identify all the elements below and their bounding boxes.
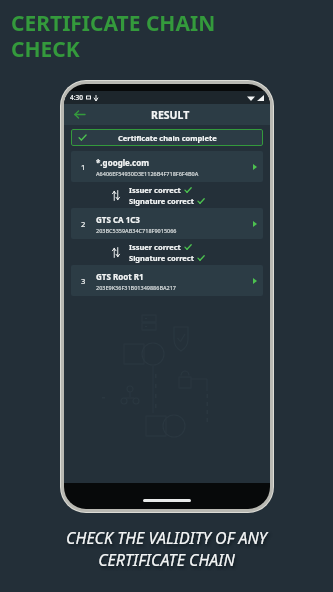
staticText: CERTIFICATE CHAIN (98, 549, 235, 571)
button[interactable]: 2 (71, 208, 263, 239)
staticText: GTS Root R1 (96, 271, 144, 282)
staticText: CERTIFICATE CHAIN CHECK (11, 9, 216, 64)
staticText: RESULT (151, 108, 190, 122)
staticText: Issuer correct (129, 242, 181, 252)
staticText: Signature correct (129, 196, 194, 206)
staticText: Signature correct (129, 253, 194, 263)
button[interactable]: Certificate chain complete (71, 129, 263, 146)
button[interactable]: 3 (71, 265, 263, 296)
staticText: 3 (81, 276, 86, 286)
button[interactable]: 1 (71, 151, 263, 182)
staticText: 203E9K36F31B01349886BA217 (96, 284, 177, 291)
staticText: 2 (81, 219, 86, 229)
staticText: Certificate chain complete (118, 133, 217, 143)
staticText: Issuer correct (129, 185, 181, 195)
staticText: 4:30 (70, 93, 83, 102)
button[interactable]: Back (64, 104, 94, 125)
staticText: 203BC5359AB34C718F9015066 (96, 227, 177, 234)
staticText: A6406EF54930D3E1126B4F718F6F4B0A (96, 170, 199, 177)
staticText: GTS CA 1C3 (96, 214, 140, 225)
staticText: *.google.com (96, 157, 150, 168)
staticText: CHECK THE VALIDITY OF ANY (66, 527, 267, 549)
staticText: 1 (81, 162, 86, 172)
